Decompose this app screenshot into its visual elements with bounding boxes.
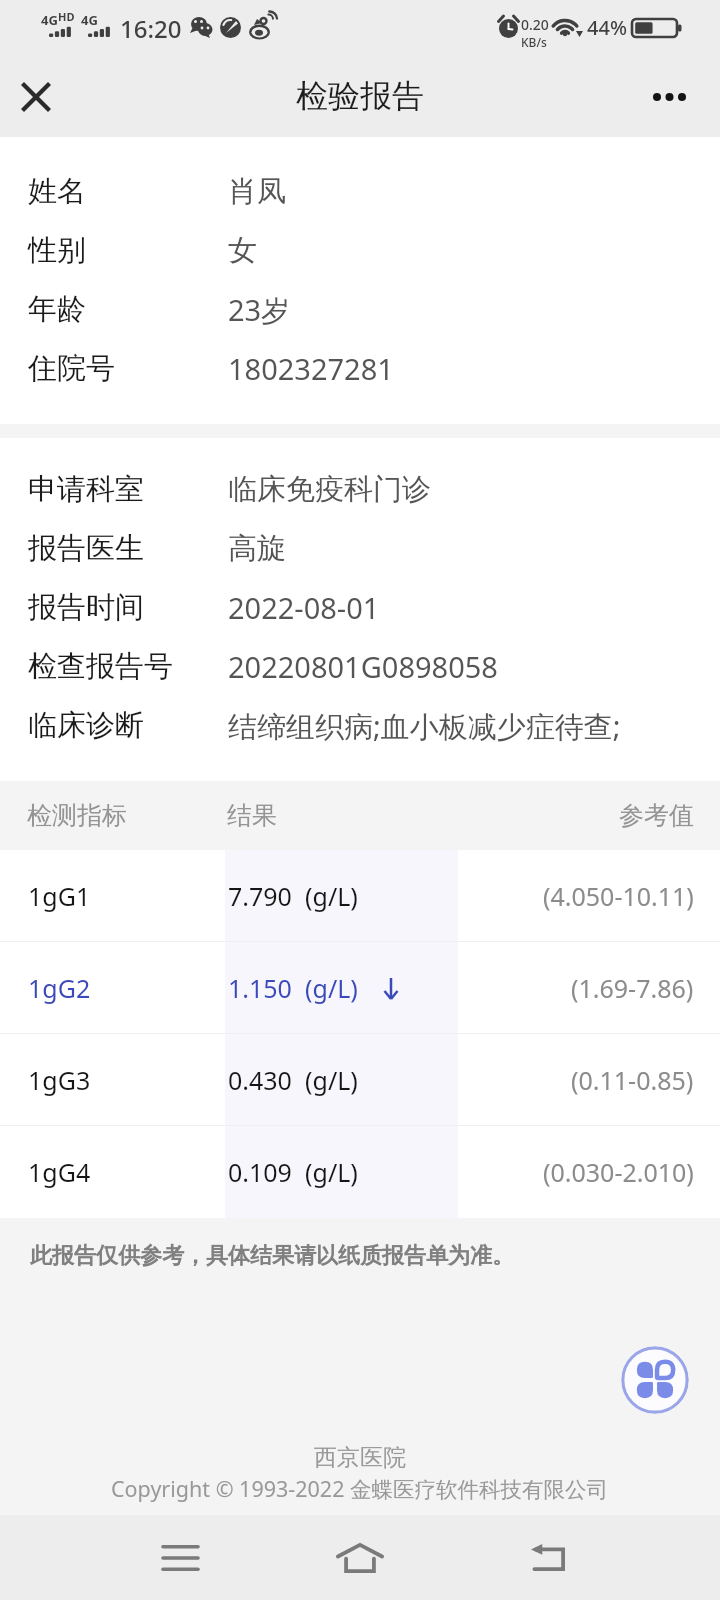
staticText: 1gG3	[28, 1063, 91, 1097]
button[interactable]: Recent apps	[135, 1515, 225, 1600]
staticText: 20220801G0898058	[228, 647, 498, 686]
staticText: (g/L)	[305, 971, 358, 1005]
staticText: 此报告仅供参考，具体结果请以纸质报告单为准。	[30, 1242, 514, 1270]
staticText: 4G	[81, 11, 98, 29]
staticText: 1802327281	[228, 349, 394, 388]
staticText: (g/L)	[305, 879, 358, 913]
button[interactable]: 申请科室	[0, 460, 720, 519]
button[interactable]: Home	[315, 1515, 405, 1600]
button[interactable]: 1gG1	[0, 850, 720, 941]
staticText: 女	[228, 232, 257, 269]
button[interactable]: 住院号	[0, 339, 720, 398]
staticText: 高旋	[228, 530, 286, 567]
staticText: 结果	[227, 800, 277, 831]
button[interactable]: 1gG2	[0, 942, 720, 1033]
staticText: Copyright © 1993-2022 金蝶医疗软件科技有限公司	[111, 1474, 609, 1503]
staticText: HD	[58, 9, 75, 24]
staticText: 1gG1	[28, 879, 91, 913]
staticText: (0.030-2.010)	[543, 1155, 694, 1189]
button[interactable]: 报告医生	[0, 519, 720, 578]
button[interactable]: 临床诊断	[0, 696, 720, 755]
staticText: 0.109	[228, 1155, 292, 1189]
button[interactable]: Back	[503, 1515, 593, 1600]
staticText: 0.20	[521, 15, 549, 34]
button[interactable]: 1gG4	[0, 1126, 720, 1217]
staticText: 临床免疫科门诊	[228, 471, 431, 508]
staticText: 住院号	[28, 350, 115, 387]
staticText: 2022-08-01	[228, 588, 380, 627]
staticText: 44%	[587, 14, 627, 41]
button[interactable]: 报告时间	[0, 578, 720, 637]
staticText: 性别	[28, 232, 86, 269]
staticText: 结缔组织病;血小板减少症待查;	[228, 706, 621, 746]
staticText: (g/L)	[305, 1063, 358, 1097]
staticText: 报告医生	[28, 530, 144, 567]
button[interactable]: 年龄	[0, 280, 720, 339]
staticText: KB/s	[521, 34, 547, 50]
button[interactable]: 性别	[0, 221, 720, 280]
staticText: 0.430	[228, 1063, 292, 1097]
staticText: 检查报告号	[28, 648, 173, 685]
staticText: 23岁	[228, 290, 291, 330]
staticText: 1gG2	[28, 971, 91, 1005]
staticText: (0.11-0.85)	[571, 1063, 694, 1097]
staticText: 西京医院	[314, 1443, 406, 1472]
staticText: 检测指标	[27, 800, 127, 831]
staticText: 1.150	[228, 971, 292, 1005]
staticText: 16:20	[120, 12, 182, 45]
button[interactable]: 姓名	[0, 162, 720, 221]
staticText: 1gG4	[28, 1155, 91, 1189]
staticText: 参考值	[619, 800, 694, 831]
staticText: 临床诊断	[28, 707, 144, 744]
staticText: (g/L)	[305, 1155, 358, 1189]
staticText: 肖凤	[228, 173, 286, 210]
button[interactable]: More options	[643, 66, 705, 128]
staticText: 报告时间	[28, 589, 144, 626]
staticText: 4G	[41, 11, 58, 29]
button[interactable]: Close	[5, 66, 67, 128]
button[interactable]: Assistant	[621, 1346, 689, 1414]
button[interactable]: 1gG3	[0, 1034, 720, 1125]
staticText: 7.790	[228, 879, 292, 913]
staticText: (1.69-7.86)	[571, 971, 694, 1005]
staticText: 申请科室	[28, 471, 144, 508]
staticText: 年龄	[28, 291, 86, 328]
staticText: (4.050-10.11)	[543, 879, 694, 913]
staticText: 姓名	[28, 173, 86, 210]
staticText: 检验报告	[296, 76, 424, 116]
button[interactable]: 检查报告号	[0, 637, 720, 696]
